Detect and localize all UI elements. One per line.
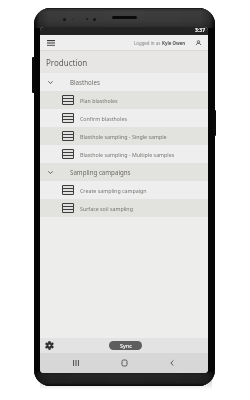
button[interactable]: Plan blastholes xyxy=(40,91,208,109)
button[interactable]: Blasthole sampling - Multiple samples xyxy=(40,145,208,163)
button[interactable]: Sync xyxy=(109,341,142,350)
button[interactable]: Menu xyxy=(40,35,61,51)
staticText: Confirm blastholes xyxy=(80,115,127,122)
staticText: Blasthole sampling - Single sample xyxy=(80,133,167,140)
staticText: Production xyxy=(46,57,88,68)
staticText: Sync xyxy=(120,342,132,349)
button[interactable]: Confirm blastholes xyxy=(40,109,208,127)
staticText: Plan blastholes xyxy=(80,97,118,104)
staticText: 3:37 xyxy=(195,27,205,34)
button[interactable]: Blastholes xyxy=(40,73,208,91)
button[interactable]: Account xyxy=(189,35,208,51)
staticText: Blasthole sampling - Multiple samples xyxy=(80,151,175,158)
button[interactable]: Sampling campaigns xyxy=(40,163,208,181)
button[interactable]: Home xyxy=(115,353,133,373)
button[interactable]: Back xyxy=(163,353,181,373)
button[interactable]: Surface soil sampling xyxy=(40,199,208,217)
staticText: Logged in as xyxy=(134,40,162,46)
staticText: Surface soil sampling xyxy=(80,205,133,212)
staticText: Kyle Owen xyxy=(162,40,186,46)
staticText: Sampling campaigns xyxy=(70,168,131,176)
staticText: Create sampling campaign xyxy=(80,187,147,194)
button[interactable]: Blasthole sampling - Single sample xyxy=(40,127,208,145)
button[interactable]: Create sampling campaign xyxy=(40,181,208,199)
button[interactable]: Recents xyxy=(67,353,85,373)
button[interactable]: Settings xyxy=(44,338,54,353)
staticText: Blastholes xyxy=(70,78,100,86)
